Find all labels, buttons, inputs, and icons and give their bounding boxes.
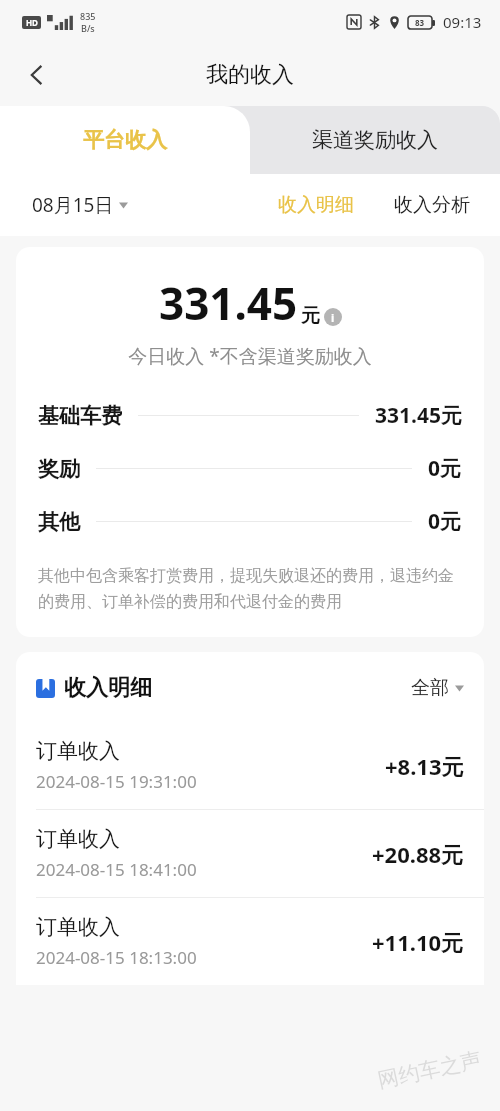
staticText: +11.10元 — [372, 927, 464, 957]
staticText: +20.88元 — [372, 839, 464, 869]
staticText: 全部 — [411, 676, 449, 700]
button[interactable]: 订单收入 — [16, 722, 484, 810]
button[interactable]: 全部 — [411, 676, 464, 700]
staticText: 基础车费 — [38, 403, 122, 429]
button[interactable]: 渠道奖励收入 — [250, 106, 500, 174]
staticText: 订单收入 — [36, 914, 120, 940]
staticText: i — [331, 310, 335, 325]
button[interactable]: Back — [14, 52, 60, 98]
staticText: 08月15日 — [32, 192, 114, 218]
staticText: +8.13元 — [385, 751, 464, 781]
button[interactable]: 订单收入 — [16, 810, 484, 898]
button[interactable]: 订单收入 — [16, 898, 484, 985]
staticText: 元 — [301, 304, 320, 328]
staticText: 83 — [415, 17, 425, 28]
button[interactable]: 08月15日 — [32, 192, 128, 218]
staticText: 订单收入 — [36, 738, 120, 764]
staticText: 835 — [80, 10, 96, 22]
staticText: 2024-08-15 18:41:00 — [36, 858, 197, 881]
staticText: 09:13 — [443, 12, 482, 32]
staticText: 331.45元 — [375, 401, 462, 430]
staticText: HD — [26, 17, 38, 28]
button[interactable]: 平台收入 — [0, 106, 250, 174]
button[interactable]: 收入明细 — [266, 187, 366, 223]
staticText: 0元 — [428, 454, 462, 483]
staticText: 渠道奖励收入 — [312, 127, 438, 153]
staticText: 0元 — [428, 507, 462, 536]
staticText: 收入明细 — [278, 193, 354, 217]
staticText: 其他 — [38, 509, 80, 535]
staticText: 2024-08-15 18:13:00 — [36, 946, 197, 969]
staticText: B/s — [81, 22, 95, 34]
staticText: 收入明细 — [64, 674, 152, 702]
staticText: 331.45 — [159, 273, 298, 333]
button[interactable]: 收入分析 — [382, 187, 482, 223]
staticText: 收入分析 — [394, 193, 470, 217]
staticText: 其他中包含乘客打赏费用，提现失败退还的费用，退违约金的费用、订单补偿的费用和代退… — [38, 566, 462, 611]
staticText: 订单收入 — [36, 826, 120, 852]
button[interactable]: Info — [324, 308, 342, 326]
staticText: 奖励 — [38, 456, 80, 482]
staticText: 我的收入 — [206, 61, 294, 89]
staticText: 2024-08-15 19:31:00 — [36, 770, 197, 793]
staticText: 平台收入 — [83, 127, 167, 153]
staticText: 网约车之声 — [375, 1046, 483, 1094]
staticText: 今日收入 *不含渠道奖励收入 — [16, 343, 484, 369]
